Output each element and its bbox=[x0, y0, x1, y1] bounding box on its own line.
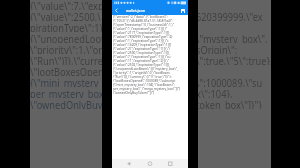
staticText: \"Run\")]},\"curre bbox=[30, 54, 103, 65]
staticText: {\"openTimestamp\":0,\"businessId\":1,\" bbox=[113, 23, 175, 27]
staticText: token_box\"]}"} bbox=[196, 98, 262, 109]
staticText: \"priority\":1,\"originId\":0,\"lootBoxe… bbox=[113, 71, 170, 75]
staticText: {\"value\":2500,\"expirationType\":1}]}, bbox=[113, 51, 171, 55]
staticText: \"Run\")]},\"currency\":{\"1\":true,\"5\… bbox=[113, 75, 172, 79]
staticText: {\"mini_mystery_box\":104},\"lootBoxes\"… bbox=[113, 83, 175, 87]
staticText: wallet.json bbox=[126, 8, 145, 13]
staticText: \":1000089,\"su bbox=[196, 76, 263, 87]
staticText: {\"1052\":{\"d6:4d88-81a7-51-58-8f1a4\": bbox=[113, 19, 174, 23]
staticText: {\"unopenedLoot bbox=[30, 32, 105, 43]
button[interactable]: Back bbox=[112, 159, 138, 168]
button[interactable]: Home bbox=[138, 159, 163, 168]
staticText: \"priority\":1,\"ori bbox=[30, 43, 105, 54]
staticText: \":true,\"5\":true}, bbox=[196, 54, 271, 65]
staticText: \"ownedOnlyBuyT bbox=[30, 98, 108, 109]
staticText: \"ownedOnlyBuyToken\"]}"} bbox=[113, 91, 155, 95]
staticText: per_mystery_box\",\"mega_mystery_box\"]}… bbox=[113, 87, 181, 91]
staticText: {\"value\":7,\"exp bbox=[30, 0, 104, 10]
staticText: sOrigin\": bbox=[196, 43, 237, 54]
staticText: {\"value\":1,\"expirationType\":1}]},\"c bbox=[113, 39, 169, 43]
staticText: {\"value\":2177,\"expirationType\":1}]}, bbox=[113, 31, 171, 35]
staticText: {\"unopenedLootBoxes\":[{\"mystery_box\"… bbox=[113, 67, 178, 71]
staticText: x\":104}, bbox=[196, 87, 233, 98]
staticText: {\"value\":11,\"expirationType\":2}]},\" bbox=[113, 59, 170, 63]
button[interactable]: Navigate up bbox=[112, 6, 121, 15]
staticText: \"lootBoxesOpened\":1000089,\"subscript bbox=[113, 79, 176, 83]
staticText: {\"value\":14209,\"expirationType\":1}]} bbox=[113, 43, 172, 47]
staticText: {\"mini_mystery_ bbox=[30, 76, 103, 87]
staticText: {\"version\":2,\"data\":{\"lootBoxes\": bbox=[113, 15, 168, 19]
staticText: {\"value\":2502,\"expirationType\":1}]}, bbox=[113, 63, 171, 67]
staticText: {\"value\":7800999,\"expirationType\":2} bbox=[113, 35, 173, 39]
staticText: 520399999,\"ex bbox=[196, 10, 263, 21]
staticText: {\"value\":27,\"expirationType\":1}]},\"… bbox=[113, 47, 170, 51]
staticText: {\"value\":1,\"expirationType\":1}]},\" bbox=[113, 27, 168, 31]
button[interactable]: Recent apps bbox=[163, 159, 188, 168]
staticText: pirationType\":1) bbox=[30, 21, 103, 32]
staticText: \"mystery_box\", bbox=[196, 32, 268, 43]
staticText: {\"value\":2500,\ bbox=[30, 10, 101, 21]
staticText: \"lootBoxesOpen bbox=[30, 65, 104, 76]
button[interactable]: Save bbox=[177, 6, 188, 15]
staticText: {\"value\":7,\"expirationType\":1}]},\"c… bbox=[113, 55, 171, 59]
staticText: per_mystery_box bbox=[30, 87, 104, 98]
